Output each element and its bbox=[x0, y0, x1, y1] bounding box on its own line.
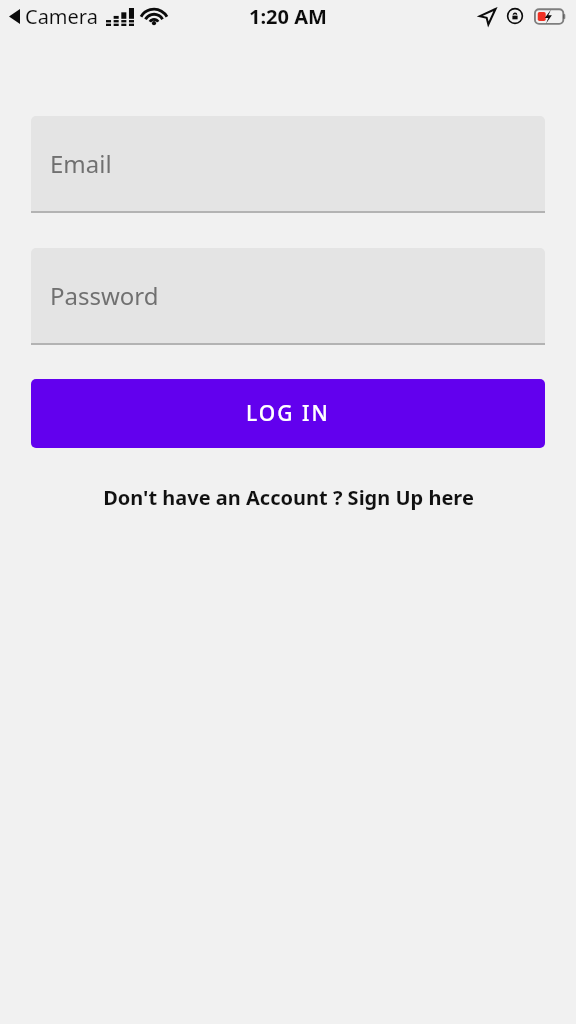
other: Location bbox=[479, 8, 496, 25]
staticText: Camera bbox=[25, 3, 98, 30]
staticText: 1:20 AM bbox=[249, 3, 327, 30]
other: Battery charging bbox=[534, 8, 567, 25]
staticText: LOG IN bbox=[246, 399, 330, 428]
other: Back to Camera bbox=[9, 9, 20, 24]
staticText: Email bbox=[50, 147, 112, 180]
staticText: Password bbox=[50, 279, 159, 312]
button[interactable]: Don't have an Account ? Sign Up here bbox=[31, 484, 545, 511]
button[interactable]: Email bbox=[31, 116, 545, 213]
button[interactable]: Password bbox=[31, 248, 545, 345]
other: Rotation lock bbox=[506, 7, 524, 25]
staticText: Don't have an Account ? Sign Up here bbox=[103, 484, 474, 511]
button[interactable]: LOG IN bbox=[31, 379, 545, 448]
